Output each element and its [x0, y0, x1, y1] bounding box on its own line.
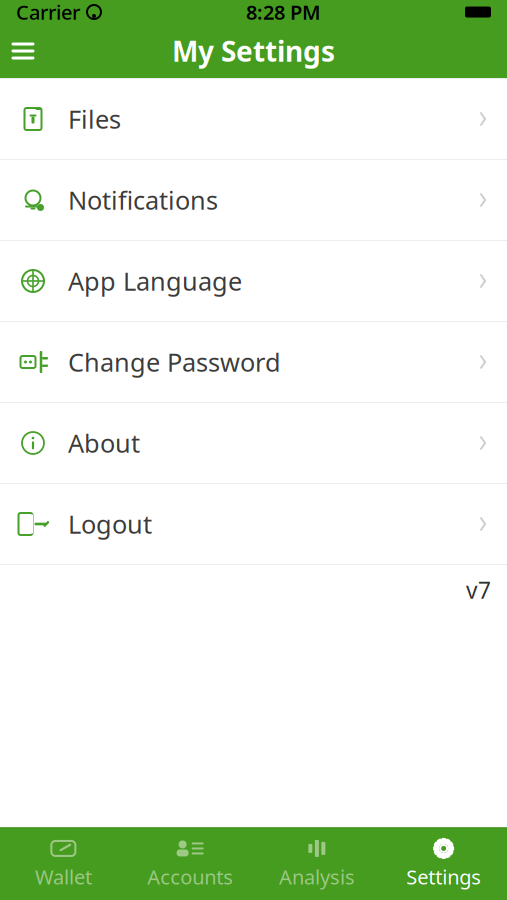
- staticText: Settings: [406, 863, 481, 890]
- button[interactable]: About: [0, 403, 507, 484]
- button[interactable]: Notifications: [0, 160, 507, 241]
- button[interactable]: Menu: [0, 29, 46, 73]
- staticText: About: [68, 426, 140, 460]
- button[interactable]: Settings: [380, 828, 507, 900]
- button[interactable]: Files: [0, 79, 507, 160]
- staticText: Analysis: [279, 863, 355, 890]
- button[interactable]: App Language: [0, 241, 507, 322]
- staticText: Notifications: [68, 183, 218, 217]
- staticText: Files: [68, 102, 121, 136]
- button[interactable]: Change Password: [0, 322, 507, 403]
- staticText: v7: [466, 575, 491, 605]
- staticText: App Language: [68, 264, 242, 298]
- staticText: Wallet: [35, 863, 92, 890]
- staticText: Logout: [68, 507, 152, 541]
- staticText: My Settings: [172, 32, 335, 70]
- staticText: Change Password: [68, 345, 281, 379]
- button[interactable]: Logout: [0, 484, 507, 565]
- button[interactable]: Wallet: [0, 828, 127, 900]
- staticText: Carrier: [16, 0, 80, 25]
- staticText: 8:28 PM: [246, 0, 321, 25]
- button[interactable]: Analysis: [253, 828, 380, 900]
- button[interactable]: Accounts: [127, 828, 254, 900]
- staticText: Accounts: [147, 863, 233, 890]
